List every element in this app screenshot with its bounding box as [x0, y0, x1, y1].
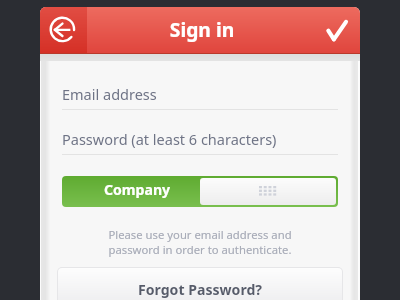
button[interactable]: Company: [62, 176, 200, 207]
button[interactable]: Forgot Password?: [58, 268, 342, 300]
staticText: Password (at least 6 characters): [62, 129, 277, 149]
staticText: Forgot Password?: [138, 280, 263, 299]
staticText: Sign in: [42, 16, 360, 42]
staticText: Email address: [62, 84, 157, 104]
button[interactable]: Back: [40, 7, 87, 53]
staticText: Please use your email address and passwo…: [62, 227, 338, 257]
button[interactable]: Confirm sign in: [311, 7, 360, 53]
button[interactable]: Switch account type: [200, 178, 336, 205]
staticText: Company: [104, 180, 171, 199]
